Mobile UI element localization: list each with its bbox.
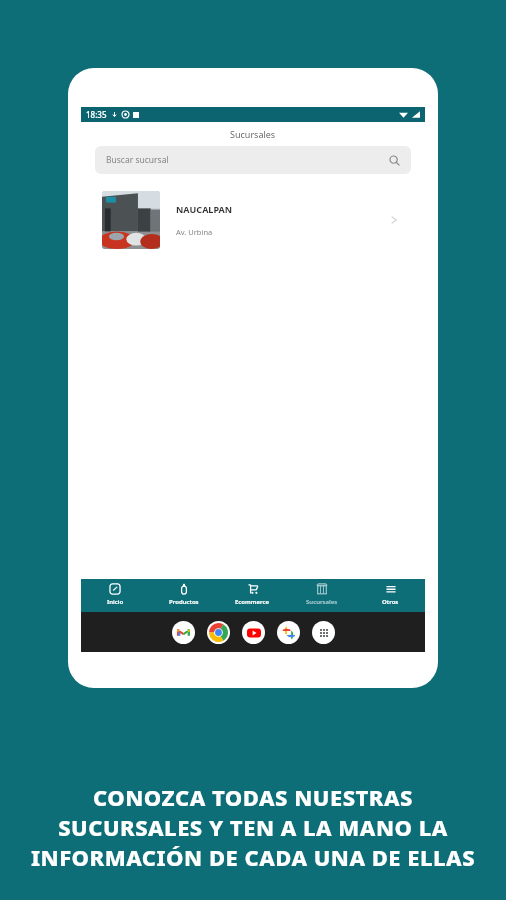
button[interactable]: Buscar sucursal [95, 146, 411, 174]
button[interactable]: Productos [149, 579, 218, 612]
button[interactable]: Otros [356, 579, 425, 612]
staticText: Sucursales [230, 128, 276, 140]
button[interactable]: YouTube [242, 621, 265, 644]
button[interactable]: All apps [312, 621, 335, 644]
staticText: Buscar sucursal [106, 154, 169, 166]
button[interactable]: Chrome [207, 621, 230, 644]
staticText: Ecommerce [235, 598, 270, 606]
button[interactable]: NAUCALPAN [95, 184, 411, 256]
staticText: Productos [169, 598, 199, 606]
staticText: Otros [382, 598, 399, 606]
button[interactable]: Inicio [81, 579, 149, 612]
staticText: Inicio [107, 598, 124, 606]
staticText: Sucursales [306, 598, 338, 606]
staticText: CONOZCA TODAS NUESTRAS SUCURSALES Y TEN … [22, 782, 484, 872]
staticText: 18:35 [86, 109, 107, 120]
staticText: Av. Urbina [176, 227, 213, 237]
button[interactable]: Ecommerce [218, 579, 287, 612]
button[interactable]: Sucursales [287, 579, 356, 612]
button[interactable]: Gmail [172, 621, 195, 644]
button[interactable]: Google Photos [277, 621, 300, 644]
staticText: NAUCALPAN [176, 203, 233, 215]
